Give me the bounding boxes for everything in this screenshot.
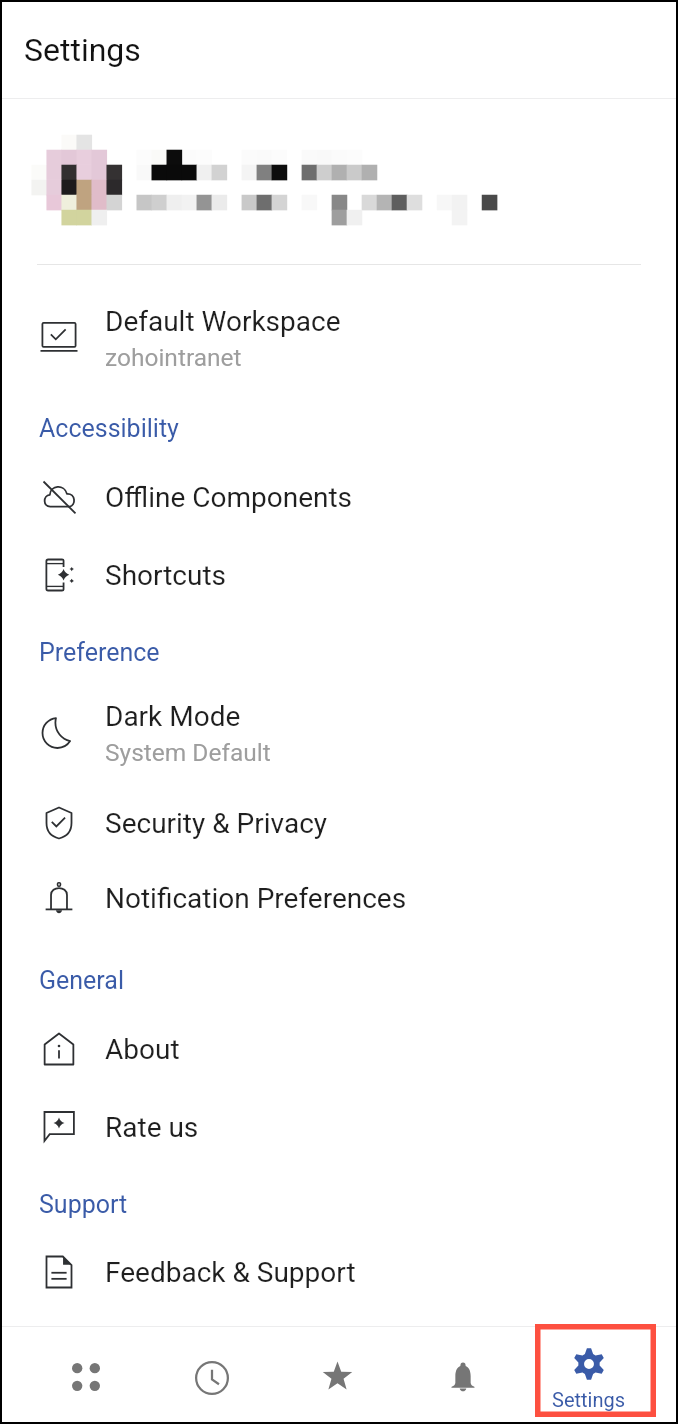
- staticText: Offline Components: [105, 481, 353, 514]
- button[interactable]: Notification Preferences: [2, 861, 676, 935]
- button[interactable]: Feedback & Support: [2, 1235, 676, 1309]
- staticText: Security & Privacy: [105, 807, 328, 840]
- button[interactable]: Notifications: [401, 1328, 525, 1422]
- button[interactable]: Shortcuts: [2, 538, 676, 612]
- staticText: Settings: [24, 31, 141, 69]
- button[interactable]: Offline Components: [2, 460, 676, 534]
- button[interactable]: Recent: [150, 1328, 274, 1422]
- staticText: About: [105, 1033, 180, 1066]
- button[interactable]: Security & Privacy: [2, 786, 676, 860]
- staticText: General: [39, 966, 125, 995]
- staticText: Support: [39, 1190, 128, 1219]
- staticText: Accessibility: [39, 414, 179, 443]
- button[interactable]: About: [2, 1012, 676, 1086]
- staticText: System Default: [105, 738, 271, 767]
- staticText: Dark Mode: [105, 700, 241, 733]
- staticText: Feedback & Support: [105, 1256, 356, 1289]
- staticText: Notification Preferences: [105, 882, 407, 915]
- staticText: zohointranet: [105, 343, 242, 372]
- button[interactable]: Favorites: [275, 1328, 399, 1422]
- button[interactable]: Dark Mode: [2, 693, 676, 773]
- button[interactable]: Default Workspace: [2, 296, 676, 380]
- button[interactable]: [2, 102, 676, 262]
- button[interactable]: Apps: [24, 1328, 148, 1422]
- staticText: Rate us: [105, 1111, 199, 1144]
- button[interactable]: Rate us: [2, 1090, 676, 1164]
- staticText: Shortcuts: [105, 559, 227, 592]
- staticText: Settings: [552, 1388, 626, 1411]
- button[interactable]: Settings: [527, 1327, 651, 1421]
- staticText: Preference: [39, 638, 160, 667]
- staticText: Default Workspace: [105, 305, 341, 338]
